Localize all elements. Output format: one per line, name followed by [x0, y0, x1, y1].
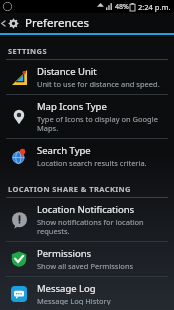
button[interactable]: Map Icons Type	[0, 95, 174, 138]
staticText: Unit to use for distance and speed.	[37, 79, 160, 89]
staticText: Map Icons Type	[37, 100, 107, 113]
button[interactable]: Permissions	[0, 242, 174, 276]
button[interactable]: Distance Unit	[0, 60, 174, 94]
staticText: 48%	[115, 2, 129, 12]
staticText: Message Log	[37, 282, 96, 295]
staticText: Search Type	[37, 144, 91, 157]
staticText: Permissions	[37, 247, 92, 260]
staticText: Type of Icons to display on Google Maps.	[37, 114, 168, 133]
staticText: Location Notifications	[37, 203, 135, 216]
button[interactable]: Message Log	[0, 277, 174, 310]
button[interactable]: Search Type	[0, 139, 174, 173]
button[interactable]: Location Notifications	[0, 198, 174, 241]
staticText: 2:24 p.m.	[138, 2, 171, 12]
staticText: Message Log History	[37, 296, 111, 305]
staticText: LOCATION SHARE & TRACKING	[8, 184, 131, 194]
staticText: SETTINGS	[8, 46, 47, 56]
staticText: Location search results criteria.	[37, 158, 147, 168]
staticText: Show notifications for location requests…	[37, 217, 168, 236]
staticText: Distance Unit	[37, 65, 97, 78]
staticText: Show all saved Permissions	[37, 261, 134, 271]
button[interactable]: Navigate up	[0, 13, 20, 33]
staticText: Preferences	[25, 15, 90, 31]
